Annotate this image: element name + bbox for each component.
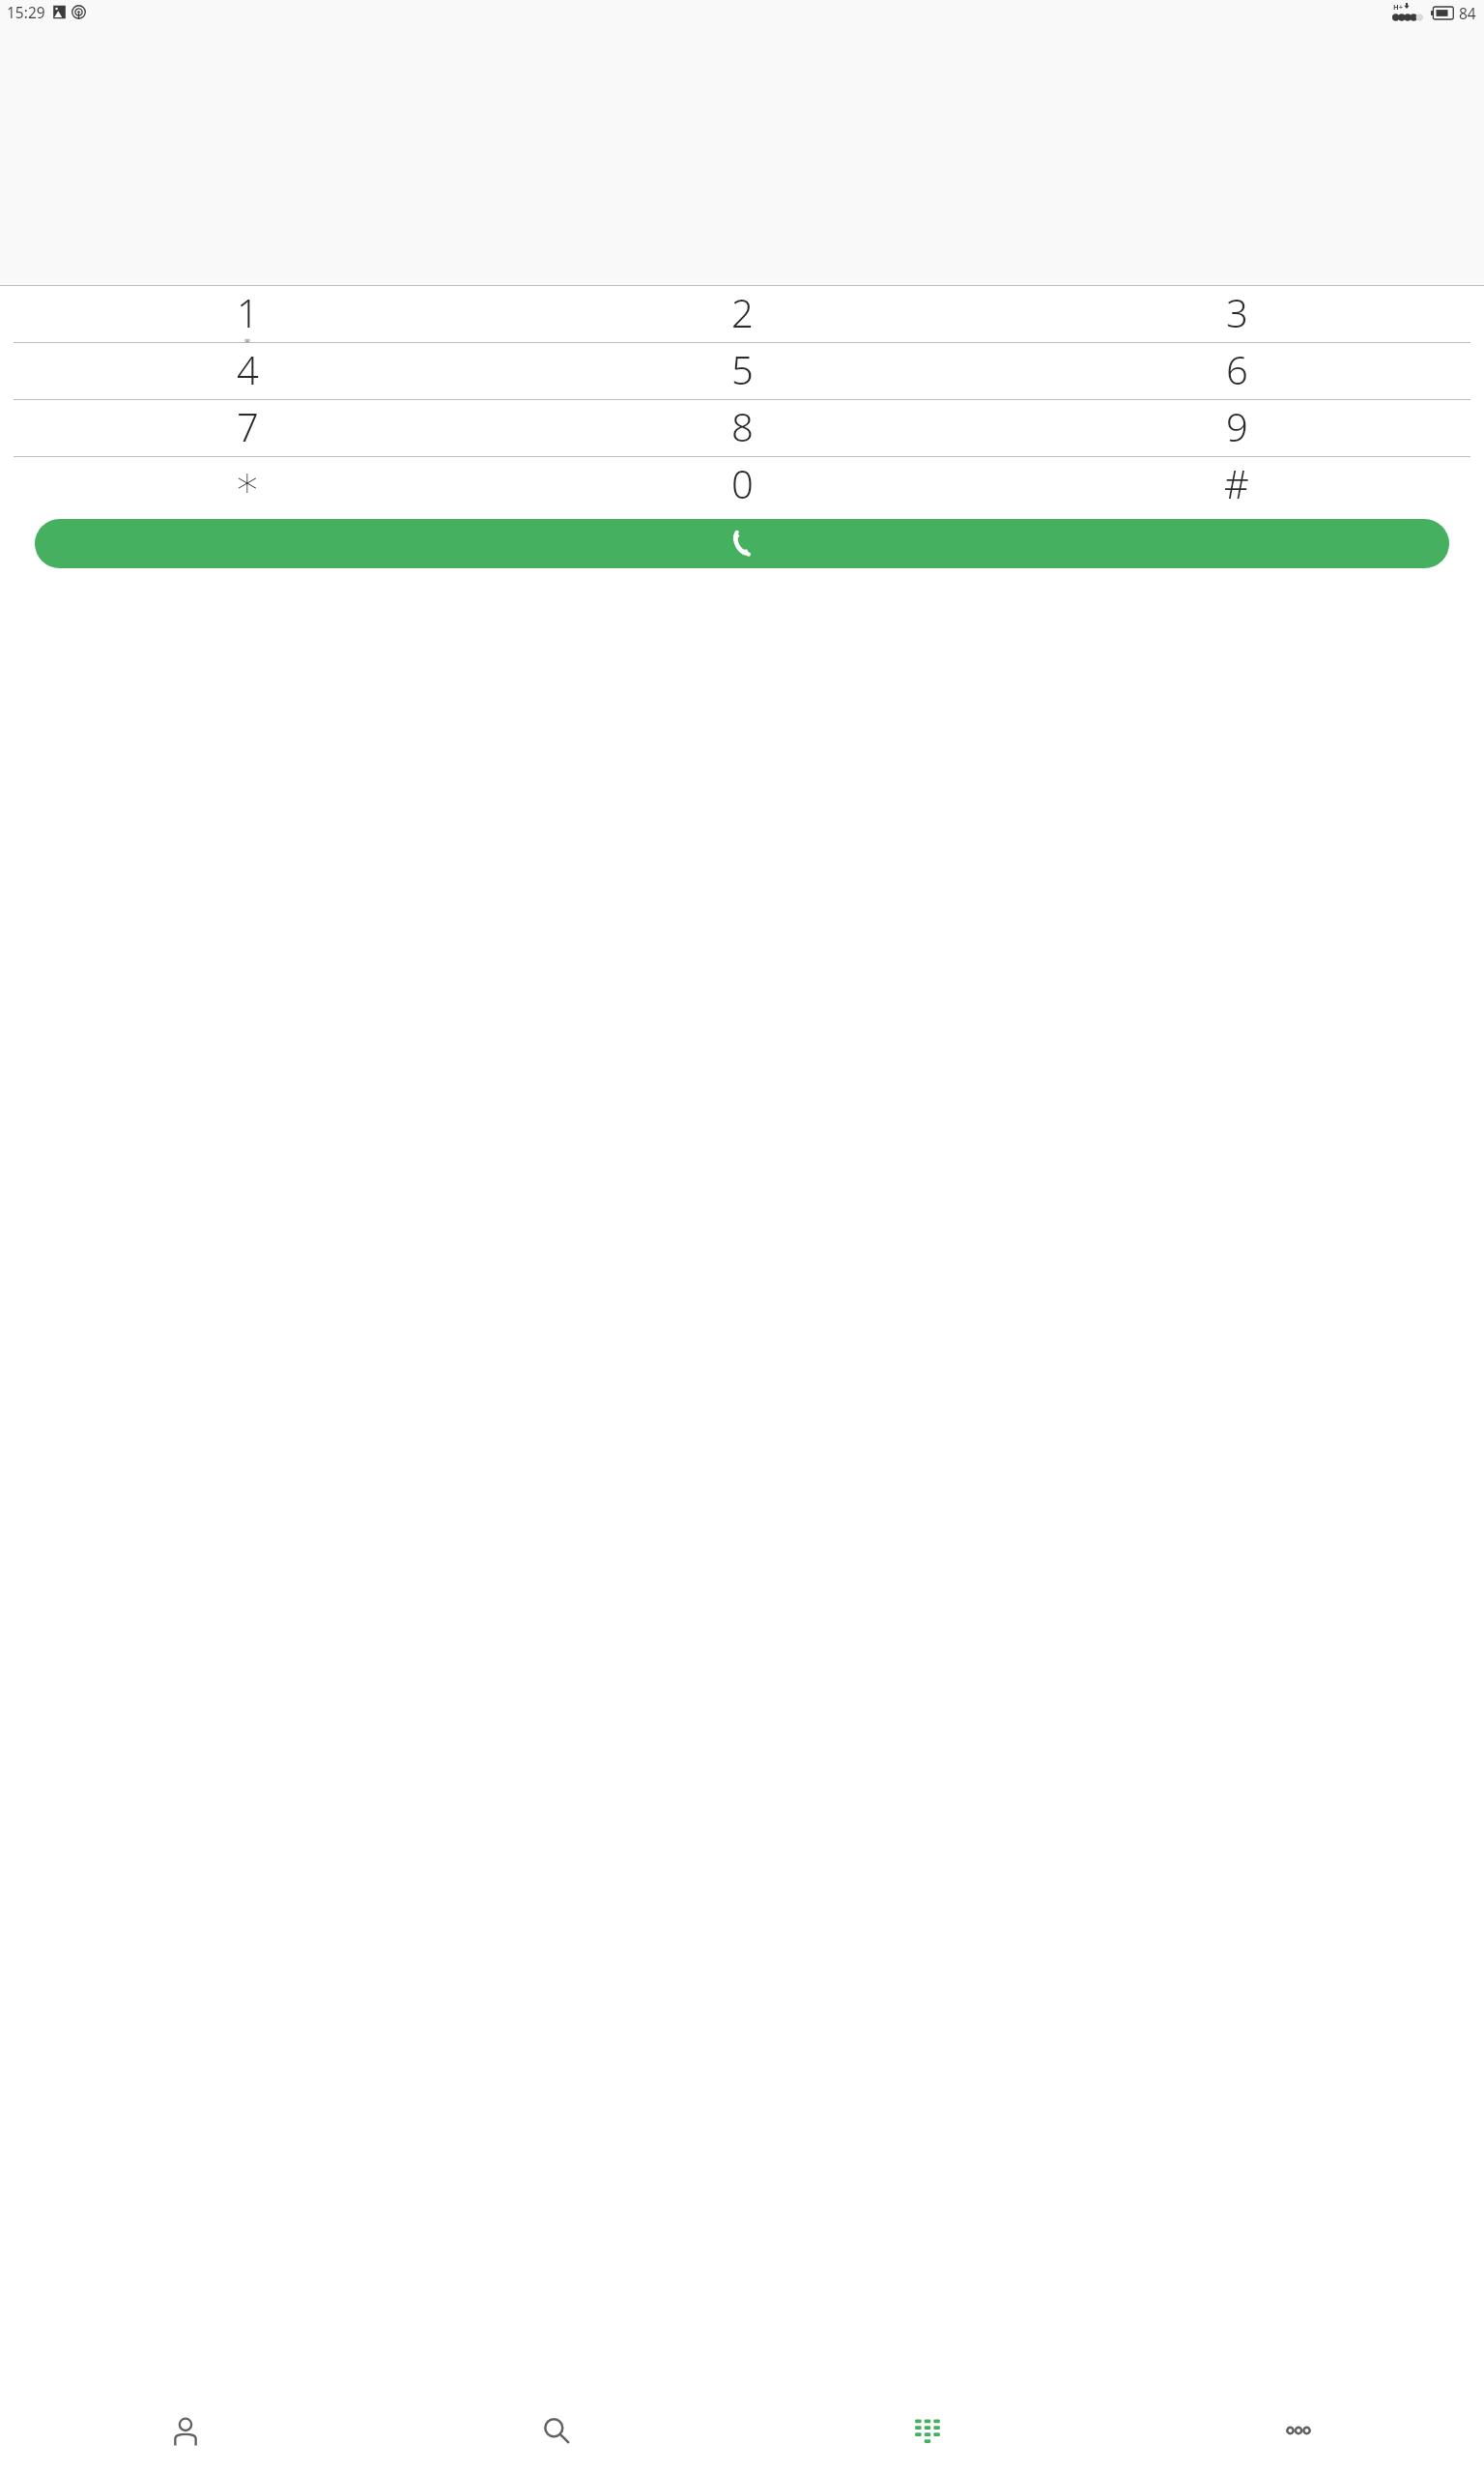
staticText: 5 [731,343,754,395]
staticText: 15:29 [7,2,45,22]
button[interactable]: 6 [989,343,1484,399]
button[interactable]: Dialpad [742,2401,1113,2460]
staticText: 3 [1226,286,1248,338]
button[interactable]: 9 [989,400,1484,456]
staticText: 0 [731,457,754,509]
staticText: 1 [237,286,259,338]
staticText: 2 [731,286,754,338]
staticText: 9 [1226,400,1248,452]
staticText: ∗ [234,457,261,506]
staticText: 7 [237,400,259,452]
button[interactable]: More options [1113,2401,1484,2460]
staticText: 8 [731,400,754,452]
button[interactable]: Call [35,519,1449,568]
button[interactable]: Search [371,2401,742,2460]
button[interactable]: 2 [495,286,989,342]
staticText: 6 [1226,343,1248,395]
staticText: # [1224,457,1249,509]
staticText: 4 [237,343,259,395]
staticText: H+ [1393,2,1404,12]
button[interactable]: # [989,457,1484,513]
button[interactable]: ∗ [0,457,495,513]
button[interactable]: 7 [0,400,495,456]
button[interactable]: Contacts [0,2401,371,2460]
button[interactable]: 4 [0,343,495,399]
button[interactable]: 3 [989,286,1484,342]
button[interactable]: 0 [495,457,989,513]
button[interactable]: 1 [0,286,495,342]
button[interactable]: 5 [495,343,989,399]
staticText: 84 [1459,3,1476,23]
button[interactable]: 8 [495,400,989,456]
